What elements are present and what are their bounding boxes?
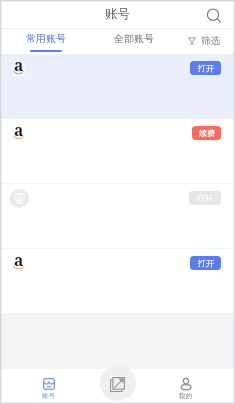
staticText: 常用账号 bbox=[26, 32, 66, 45]
staticText: a bbox=[14, 249, 24, 266]
button[interactable]: 打开 bbox=[189, 191, 221, 205]
button[interactable]: 打开 bbox=[190, 61, 221, 75]
staticText: 打开 bbox=[198, 258, 214, 268]
staticText: 筛选 bbox=[201, 35, 220, 47]
staticText: 全部账号 bbox=[114, 32, 154, 45]
button[interactable]: Screen mirroring bbox=[100, 365, 136, 401]
staticText: a bbox=[14, 54, 24, 71]
button[interactable]: 我的 bbox=[165, 369, 206, 404]
button[interactable]: a bbox=[0, 119, 235, 184]
button[interactable]: 续费 bbox=[192, 126, 221, 140]
staticText: 账号 bbox=[42, 392, 55, 400]
staticText: 我的 bbox=[179, 392, 192, 400]
staticText: 续费 bbox=[199, 128, 215, 138]
staticText: a bbox=[14, 119, 24, 136]
button[interactable]: a bbox=[0, 54, 235, 119]
button[interactable]: a bbox=[0, 249, 235, 314]
button[interactable]: 账号 bbox=[28, 369, 69, 404]
button[interactable]: 筛选 bbox=[178, 29, 235, 54]
button[interactable]: 打开 bbox=[190, 256, 221, 270]
button[interactable]: Search bbox=[204, 6, 224, 26]
button[interactable]: 打开 bbox=[0, 184, 235, 249]
button[interactable]: 常用账号 bbox=[2, 29, 90, 54]
staticText: 账号 bbox=[105, 6, 130, 22]
staticText: 打开 bbox=[198, 63, 214, 73]
staticText: 打开 bbox=[197, 193, 213, 203]
button[interactable]: 全部账号 bbox=[90, 29, 178, 54]
